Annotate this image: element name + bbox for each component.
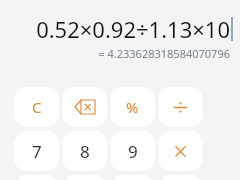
button[interactable]: Backspace [62,87,107,127]
button[interactable]: Multiply [158,131,203,171]
staticText: % [126,97,139,117]
button[interactable]: 8 [62,131,107,171]
staticText: 7 [32,140,42,163]
staticText: = 4.233628318584070796 [98,46,230,61]
button[interactable]: 5 [62,175,107,180]
button[interactable]: 7 [14,131,59,171]
staticText: 8 [80,140,90,163]
button[interactable]: 4 [14,175,59,180]
staticText: 9 [128,140,138,163]
button[interactable]: Minus [158,175,203,180]
button[interactable]: C [14,87,59,127]
button[interactable]: Percent [110,87,155,127]
button[interactable]: 6 [110,175,155,180]
staticText: 0.52×0.92÷1.13×10 [36,14,230,44]
staticText: C [32,97,42,117]
button[interactable]: 9 [110,131,155,171]
button[interactable]: Divide [158,87,203,127]
